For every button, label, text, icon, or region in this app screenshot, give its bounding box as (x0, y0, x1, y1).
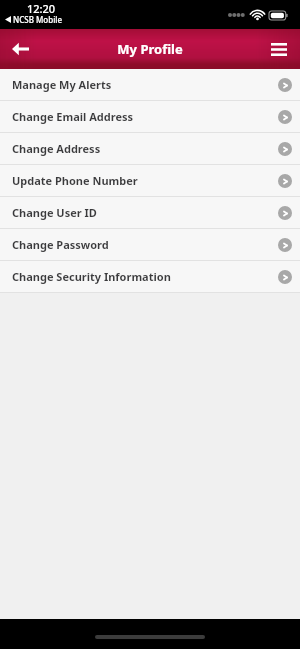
staticText: Change Password (12, 237, 278, 252)
button[interactable]: Menu (258, 29, 300, 69)
button[interactable]: Change Password (0, 229, 300, 260)
staticText: Manage My Alerts (12, 77, 278, 92)
staticText: 12:20 (27, 1, 56, 16)
staticText: Update Phone Number (12, 173, 278, 188)
staticText: NCSB Mobile (13, 14, 63, 25)
button[interactable]: Back (0, 29, 40, 69)
button[interactable]: Change Email Address (0, 101, 300, 132)
button[interactable]: Change Address (0, 133, 300, 164)
staticText: Change Address (12, 141, 278, 156)
button[interactable]: Change User ID (0, 197, 300, 228)
staticText: My Profile (117, 40, 183, 58)
staticText: Change User ID (12, 205, 278, 220)
button[interactable]: Manage My Alerts (0, 69, 300, 100)
staticText: Change Email Address (12, 109, 278, 124)
staticText: Change Security Information (12, 269, 278, 284)
button[interactable]: Change Security Information (0, 261, 300, 292)
button[interactable]: Update Phone Number (0, 165, 300, 196)
